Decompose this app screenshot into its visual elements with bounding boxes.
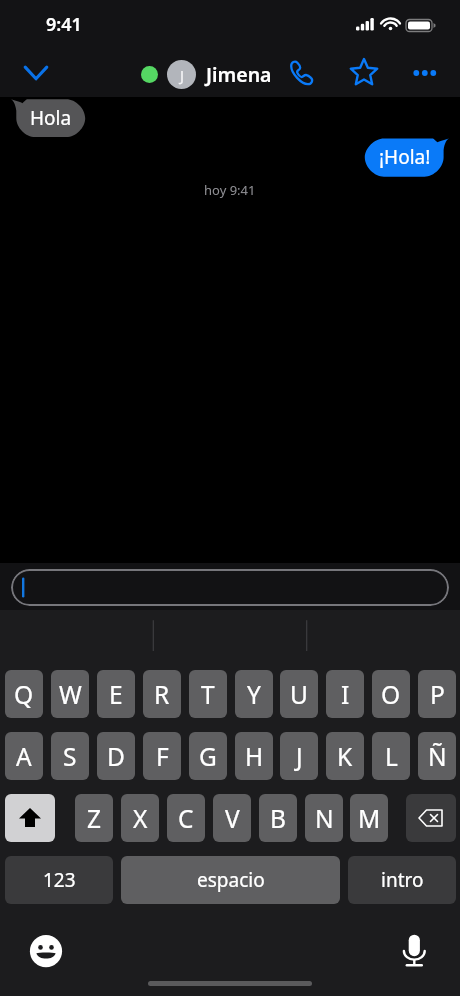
staticText: W xyxy=(59,678,82,711)
staticText: E xyxy=(109,678,123,711)
staticText: Ñ xyxy=(428,740,447,773)
button[interactable]: intro xyxy=(348,856,456,904)
button[interactable]: V xyxy=(213,794,251,842)
button[interactable]: K xyxy=(326,732,364,780)
button[interactable]: Shift xyxy=(5,794,55,842)
staticText: K xyxy=(337,740,353,773)
staticText: Q xyxy=(14,678,34,711)
staticText: H xyxy=(245,740,264,773)
staticText: Jimena xyxy=(206,61,272,88)
button[interactable]: G xyxy=(189,732,227,780)
button[interactable]: B xyxy=(259,794,297,842)
button[interactable]: N xyxy=(305,794,343,842)
button[interactable]: Q xyxy=(5,670,43,718)
button[interactable]: espacio xyxy=(121,856,340,904)
staticText: B xyxy=(270,802,286,835)
staticText: 123 xyxy=(43,867,76,893)
staticText: D xyxy=(107,740,125,773)
staticText: 9:41 xyxy=(46,12,82,37)
button[interactable]: Backspace xyxy=(406,794,456,842)
button[interactable]: F xyxy=(143,732,181,780)
staticText: ¡Hola! xyxy=(379,144,431,170)
button[interactable]: Y xyxy=(235,670,273,718)
staticText: Y xyxy=(247,678,261,711)
button[interactable]: Call xyxy=(286,57,318,89)
button[interactable]: Emoji xyxy=(26,931,66,971)
staticText: U xyxy=(290,678,308,711)
button[interactable]: S xyxy=(51,732,89,780)
staticText: Z xyxy=(87,802,102,835)
staticText: N xyxy=(315,802,334,835)
staticText: L xyxy=(385,740,398,773)
button[interactable]: More options xyxy=(409,57,441,89)
staticText: A xyxy=(16,740,32,773)
staticText: hoy 9:41 xyxy=(204,181,256,199)
button[interactable]: P xyxy=(418,670,456,718)
button[interactable]: Favorite xyxy=(348,57,380,89)
button[interactable]: W xyxy=(51,670,89,718)
staticText: P xyxy=(430,678,445,711)
button[interactable]: H xyxy=(235,732,273,780)
staticText: M xyxy=(358,802,381,835)
staticText: G xyxy=(199,740,217,773)
button[interactable]: I xyxy=(326,670,364,718)
button[interactable]: 123 xyxy=(5,856,113,904)
button[interactable]: C xyxy=(167,794,205,842)
staticText: J xyxy=(180,65,184,85)
staticText: F xyxy=(156,740,169,773)
staticText: X xyxy=(133,802,148,835)
button[interactable]: O xyxy=(372,670,410,718)
staticText: R xyxy=(154,678,170,711)
staticText: O xyxy=(381,678,401,711)
button[interactable]: ¡Hola! xyxy=(365,138,444,176)
button[interactable]: M xyxy=(350,794,388,842)
button[interactable]: Ñ xyxy=(418,732,456,780)
staticText: J xyxy=(296,740,303,773)
button[interactable]: T xyxy=(189,670,227,718)
staticText: I xyxy=(341,678,350,711)
button[interactable]: A xyxy=(5,732,43,780)
button[interactable]: J xyxy=(141,58,272,90)
button[interactable]: R xyxy=(143,670,181,718)
button[interactable]: X xyxy=(121,794,159,842)
button[interactable]: Hola xyxy=(16,99,85,137)
staticText: espacio xyxy=(197,867,265,893)
button[interactable]: D xyxy=(97,732,135,780)
button[interactable] xyxy=(11,569,449,606)
staticText: intro xyxy=(381,867,424,893)
button[interactable]: E xyxy=(97,670,135,718)
staticText: T xyxy=(201,678,215,711)
button[interactable]: Z xyxy=(75,794,113,842)
button[interactable]: U xyxy=(280,670,318,718)
staticText: C xyxy=(178,802,194,835)
staticText: Hola xyxy=(30,105,72,131)
staticText: V xyxy=(225,802,240,835)
button[interactable]: J xyxy=(280,732,318,780)
button[interactable]: Collapse xyxy=(16,52,56,92)
staticText: S xyxy=(63,740,77,773)
button[interactable]: L xyxy=(372,732,410,780)
button[interactable]: Voice input xyxy=(394,931,434,971)
